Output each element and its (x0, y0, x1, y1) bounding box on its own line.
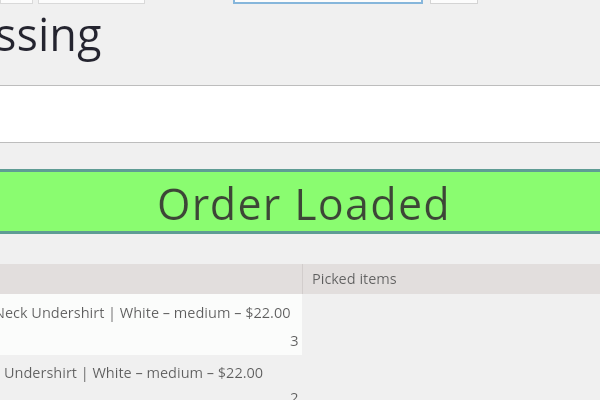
button[interactable]: Toolbar button (38, 0, 145, 4)
staticText: 3 (290, 330, 299, 350)
button[interactable]: Menu (430, 0, 478, 4)
staticText: Neck Undershirt | White – medium – $22.0… (0, 303, 291, 323)
button[interactable]: Undershirt | White – medium – $22.00 (0, 355, 600, 400)
staticText: ssing (0, 3, 102, 64)
button[interactable]: Neck Undershirt | White – medium – $22.0… (0, 294, 600, 355)
staticText: Undershirt | White – medium – $22.00 (4, 363, 264, 383)
staticText: Order Loaded (157, 174, 452, 233)
button[interactable]: Order Loaded (0, 172, 600, 231)
button[interactable]: Toolbar button (0, 0, 33, 4)
staticText: 2 (290, 387, 299, 400)
staticText: Picked items (312, 269, 397, 289)
button[interactable]: Search field (233, 0, 423, 4)
